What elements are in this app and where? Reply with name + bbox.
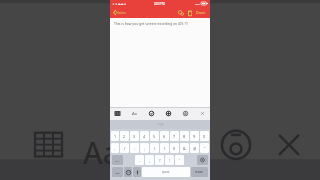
button[interactable]: Delete <box>197 155 208 165</box>
staticText: 1 <box>114 134 117 139</box>
button[interactable]: 3 <box>130 131 139 141</box>
button[interactable]: Checklist <box>147 109 156 118</box>
staticText: Aa <box>83 132 120 173</box>
button[interactable]: Notes <box>112 8 127 17</box>
button[interactable]: : <box>130 143 139 153</box>
button[interactable]: 6 <box>160 131 169 141</box>
staticText: 6 <box>163 134 166 139</box>
staticText: 8 <box>183 134 186 139</box>
staticText: 9 <box>193 134 196 139</box>
staticText: ABC <box>115 171 120 174</box>
button[interactable]: Share <box>176 8 185 17</box>
button[interactable]: , <box>145 155 154 165</box>
button[interactable]: " <box>200 143 209 153</box>
staticText: ) <box>164 146 166 151</box>
staticText: 5 <box>153 134 156 139</box>
staticText: 1103 <box>157 123 164 127</box>
button[interactable]: ABC <box>112 167 123 177</box>
staticText: , <box>149 158 150 163</box>
staticText: 0 <box>203 134 206 139</box>
staticText: 2 <box>123 134 126 139</box>
button[interactable]: ' <box>175 155 184 165</box>
staticText: Notes <box>116 10 126 15</box>
staticText: : <box>134 146 135 151</box>
button[interactable]: . <box>135 155 144 165</box>
staticText: ( <box>154 146 156 151</box>
button[interactable]: 5 <box>150 131 159 141</box>
button[interactable]: ) <box>160 143 169 153</box>
button[interactable]: 4 <box>140 131 149 141</box>
button[interactable]: 9 <box>190 131 199 141</box>
staticText: 2:03 PM <box>154 2 165 6</box>
button[interactable]: ; <box>140 143 149 153</box>
button[interactable]: 0 <box>200 131 209 141</box>
button[interactable]: 1 <box>111 131 119 141</box>
staticText: / <box>124 146 126 151</box>
staticText: . <box>139 158 140 163</box>
button[interactable]: 2 <box>120 131 129 141</box>
button[interactable]: Draw <box>164 109 173 118</box>
staticText: This is how you get screen recording on … <box>114 21 189 26</box>
staticText: return <box>195 170 204 174</box>
staticText: $ <box>173 146 176 151</box>
staticText: ! <box>169 158 170 163</box>
staticText: & <box>183 146 186 151</box>
button[interactable]: Aa <box>130 109 139 118</box>
button[interactable]: Emoji <box>124 167 132 177</box>
staticText: 95% <box>195 2 200 5</box>
staticText: space <box>162 170 170 174</box>
button[interactable]: ? <box>155 155 164 165</box>
staticText: 3 <box>133 134 136 139</box>
button[interactable]: - <box>111 143 119 153</box>
button[interactable]: Table <box>113 109 122 118</box>
staticText: ' <box>179 158 180 163</box>
button[interactable]: & <box>180 143 189 153</box>
button[interactable]: 7 <box>170 131 179 141</box>
button[interactable]: Close <box>198 109 207 118</box>
button[interactable]: ! <box>165 155 174 165</box>
button[interactable]: Delete <box>185 8 194 17</box>
staticText: 7 <box>173 134 176 139</box>
staticText: Aa <box>132 111 137 116</box>
staticText: " <box>204 146 206 151</box>
button[interactable]: / <box>120 143 129 153</box>
staticText: @ <box>193 146 197 151</box>
button[interactable]: #+= <box>112 155 123 165</box>
button[interactable]: Camera <box>181 109 190 118</box>
staticText: - <box>114 146 116 151</box>
staticText: 4 <box>143 134 146 139</box>
button[interactable]: Dictation <box>133 167 141 177</box>
staticText: #+= <box>115 159 120 162</box>
staticText: ? <box>159 158 161 163</box>
button[interactable]: Done <box>194 8 208 17</box>
button[interactable]: return <box>191 167 208 177</box>
staticText: Docs <box>118 2 124 5</box>
staticText: Done <box>196 10 206 15</box>
button[interactable]: space <box>142 167 190 177</box>
button[interactable]: $ <box>170 143 179 153</box>
button[interactable]: ( <box>150 143 159 153</box>
button[interactable]: @ <box>190 143 199 153</box>
staticText: ; <box>144 146 145 151</box>
button[interactable]: 8 <box>180 131 189 141</box>
